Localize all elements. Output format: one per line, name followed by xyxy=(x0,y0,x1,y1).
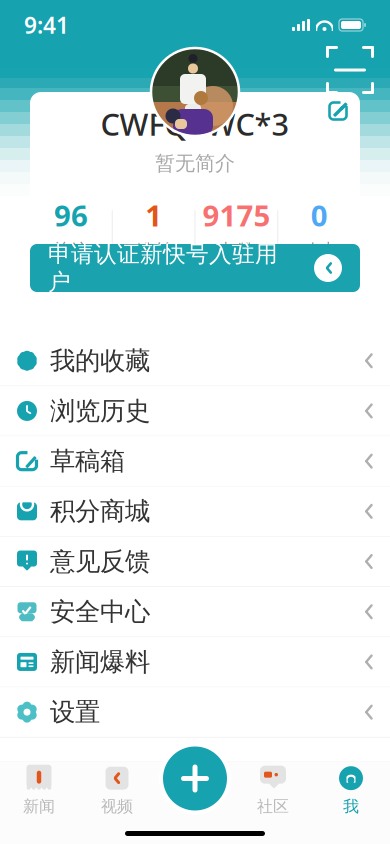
button[interactable]: 视频 xyxy=(78,759,156,816)
staticText: 草稿箱 xyxy=(50,446,125,477)
staticText: 暂无简介 xyxy=(155,151,235,176)
staticText: 动态 xyxy=(300,240,338,263)
staticText: 关注 xyxy=(52,240,90,263)
button[interactable]: 积分商城 xyxy=(0,487,390,537)
button[interactable]: 发布 xyxy=(159,742,231,814)
button[interactable]: 编辑资料 xyxy=(326,99,350,123)
button[interactable]: 申请认证新快号入驻用户 xyxy=(30,244,360,292)
button[interactable]: 社区 xyxy=(234,759,312,816)
staticText: 9175 xyxy=(202,196,270,235)
staticText: 1 xyxy=(145,196,162,235)
button[interactable]: 我的收藏 xyxy=(0,336,390,386)
button[interactable]: 1 xyxy=(113,194,195,265)
staticText: 设置 xyxy=(50,697,100,728)
staticText: 96 xyxy=(54,196,88,235)
button[interactable]: 我 xyxy=(312,759,390,816)
button[interactable]: 浏览历史 xyxy=(0,386,390,436)
button[interactable]: 扫一扫 xyxy=(334,54,366,86)
staticText: CWFQXWC*3 xyxy=(100,103,289,144)
button[interactable]: 意见反馈 xyxy=(0,537,390,587)
button[interactable]: 新闻爆料 xyxy=(0,637,390,687)
staticText: 社区 xyxy=(257,797,289,816)
button[interactable]: 9175 xyxy=(195,194,277,265)
staticText: 新闻 xyxy=(23,797,55,816)
staticText: 0 xyxy=(311,196,328,235)
staticText: 点赞 xyxy=(217,240,255,263)
staticText: 申请认证新快号入驻用户 xyxy=(48,240,278,296)
staticText: 视频 xyxy=(101,797,133,816)
staticText: 意见反馈 xyxy=(50,546,150,577)
staticText: 浏览历史 xyxy=(50,395,150,426)
staticText: 积分商城 xyxy=(50,496,150,527)
button[interactable]: 设置 xyxy=(0,687,390,738)
staticText: 9:41 xyxy=(24,10,69,40)
staticText: 粉丝 xyxy=(135,240,173,263)
button[interactable]: 新闻 xyxy=(0,759,78,816)
button[interactable]: 96 xyxy=(30,194,112,265)
staticText: 我的收藏 xyxy=(50,345,150,376)
button[interactable]: 安全中心 xyxy=(0,587,390,637)
button[interactable]: 草稿箱 xyxy=(0,436,390,487)
button[interactable]: 0 xyxy=(278,194,360,265)
staticText: 安全中心 xyxy=(50,596,150,627)
staticText: 我 xyxy=(343,797,359,816)
staticText: 新闻爆料 xyxy=(50,646,150,677)
